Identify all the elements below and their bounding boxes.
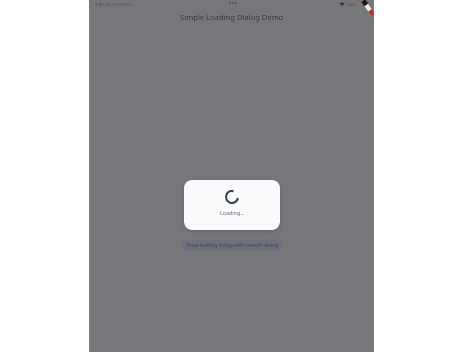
staticText: Simple Loading Dialog Demo	[180, 12, 284, 22]
other: Loading indicator	[224, 189, 240, 205]
staticText: Show loading dialog with custom dialog	[186, 242, 279, 249]
button[interactable]: Show loading dialog with custom dialog	[182, 240, 282, 251]
other: Wi-Fi signal	[339, 1, 345, 7]
staticText: Loading...	[220, 209, 245, 216]
staticText: 100%	[346, 2, 356, 7]
staticText: 午後6:10 3月10日(水)	[95, 2, 133, 7]
